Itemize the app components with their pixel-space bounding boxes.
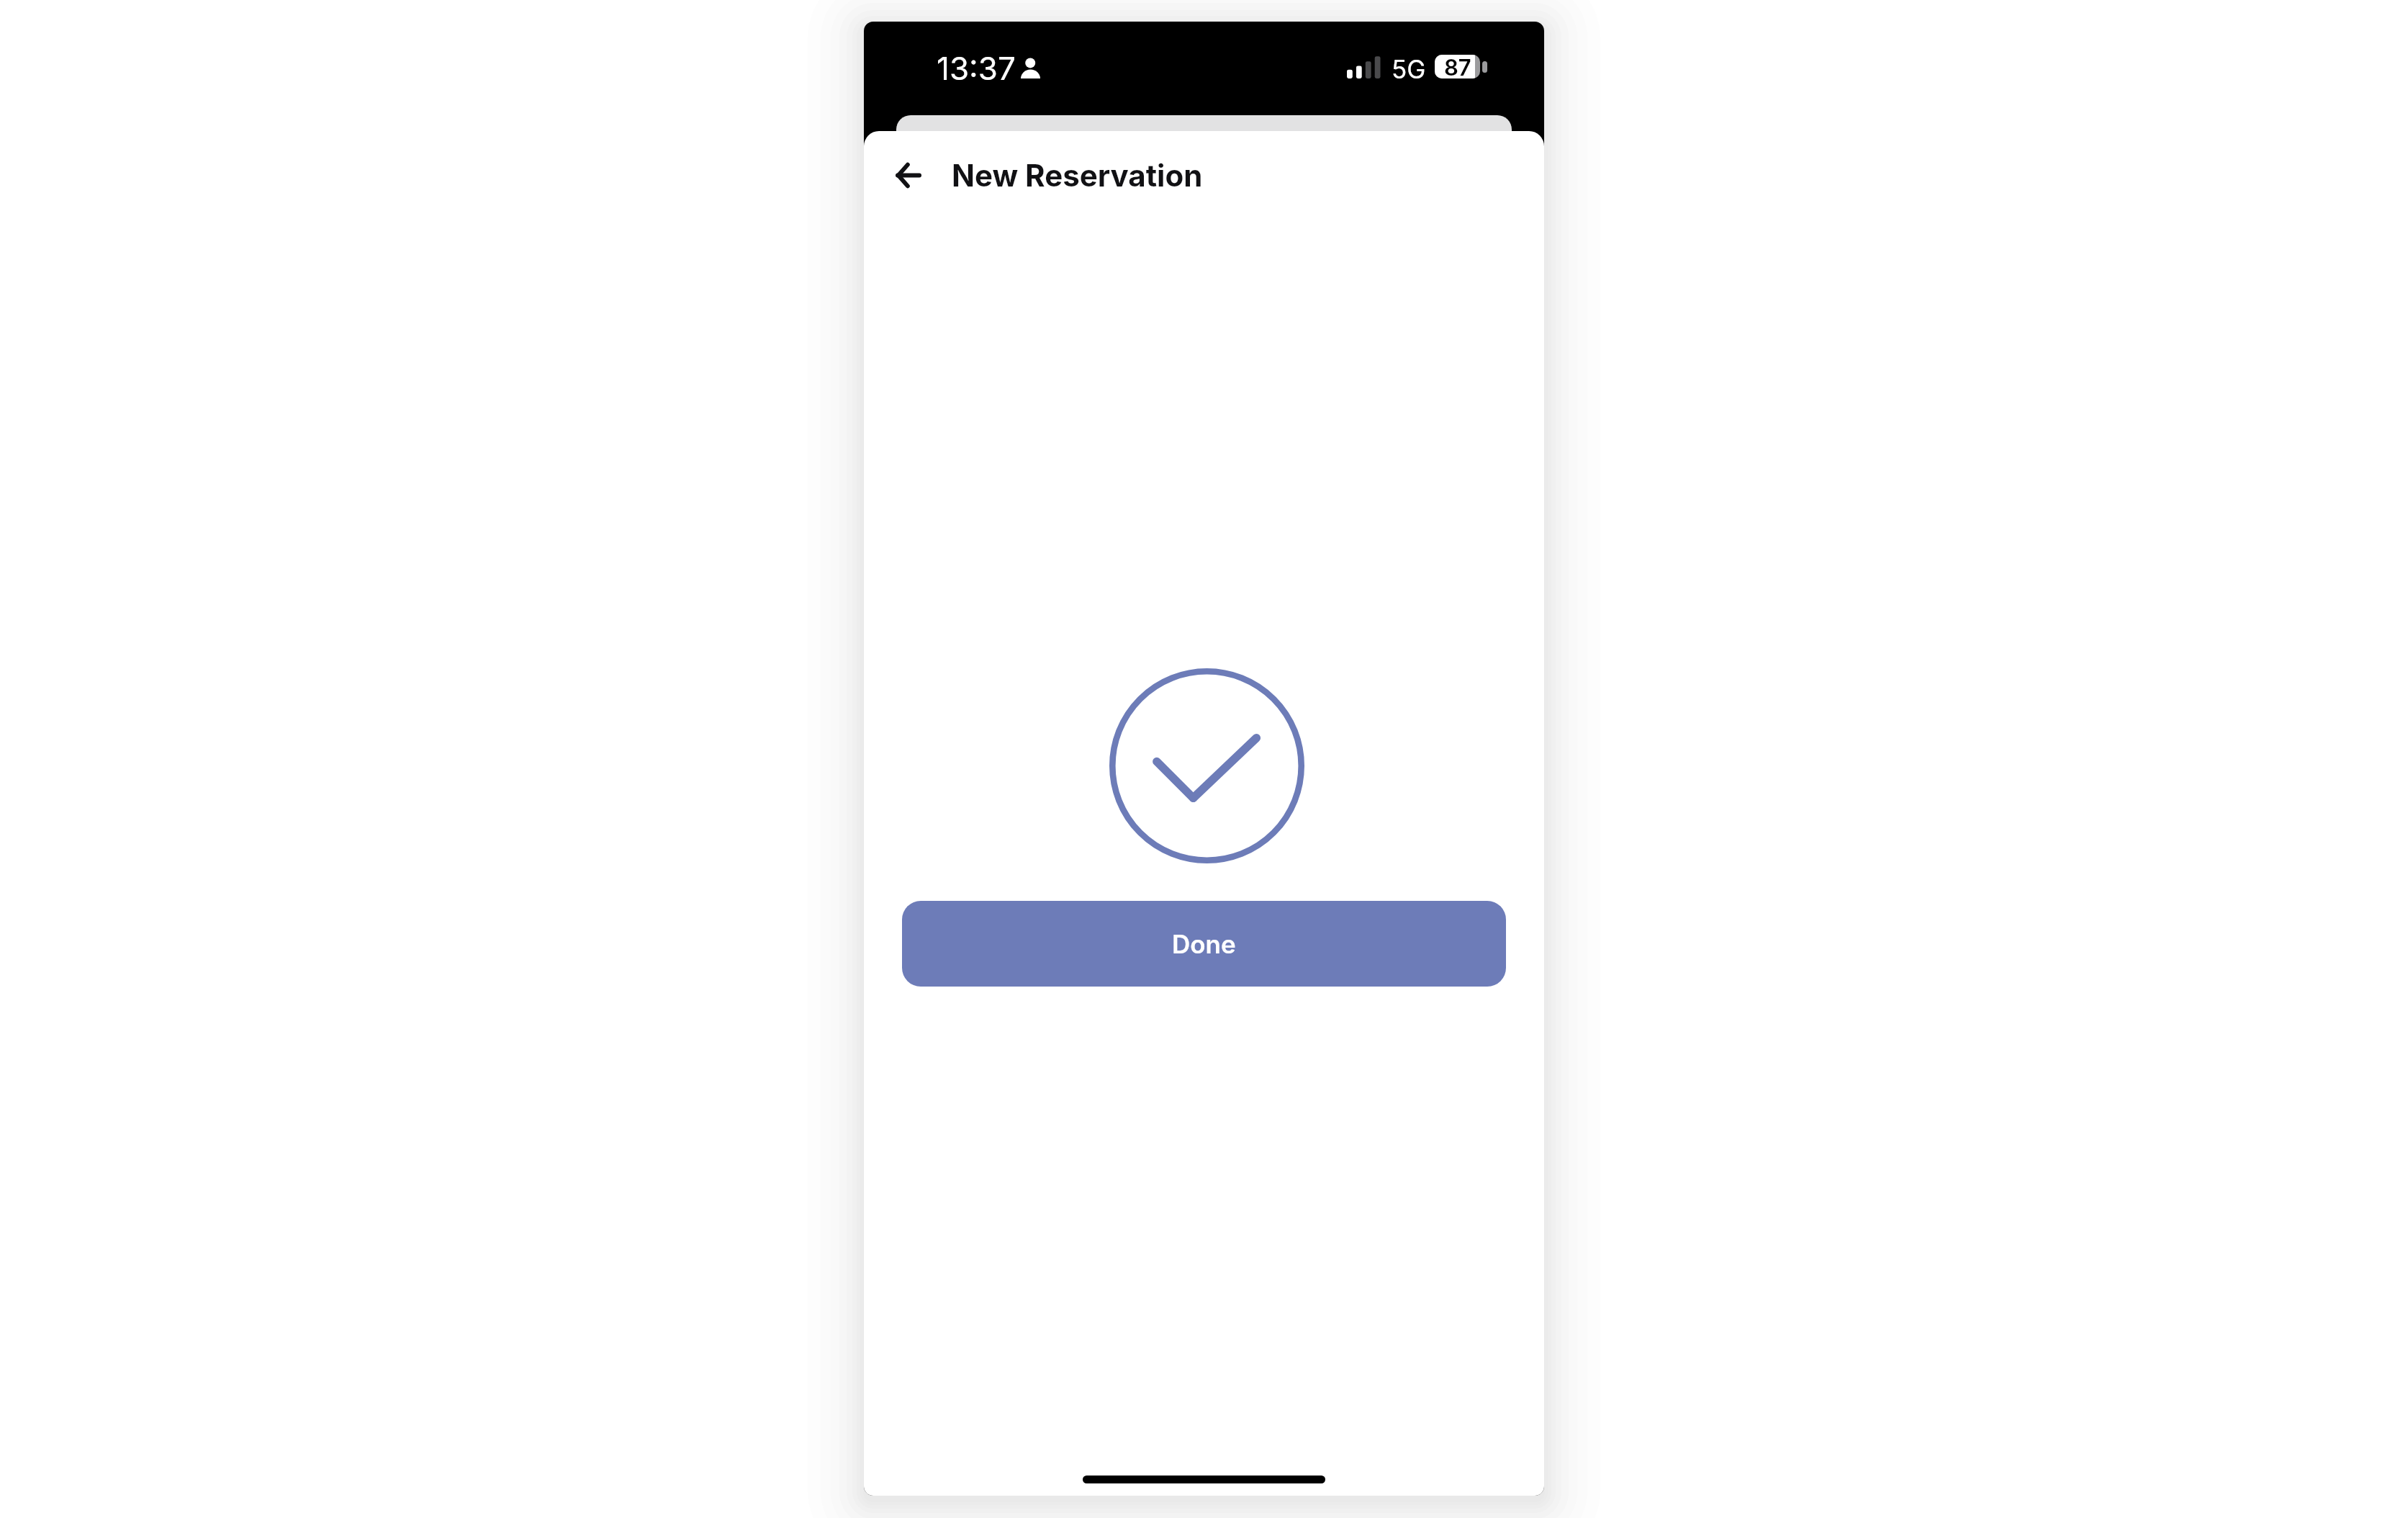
staticText: Done [1172, 929, 1236, 959]
staticText: New Reservation [952, 157, 1203, 194]
staticText: 13:37 [937, 49, 1016, 87]
staticText: 5G [1392, 54, 1426, 84]
button[interactable]: Back [888, 154, 929, 196]
button[interactable]: Done [902, 901, 1506, 987]
staticText: 87 [1444, 54, 1471, 81]
